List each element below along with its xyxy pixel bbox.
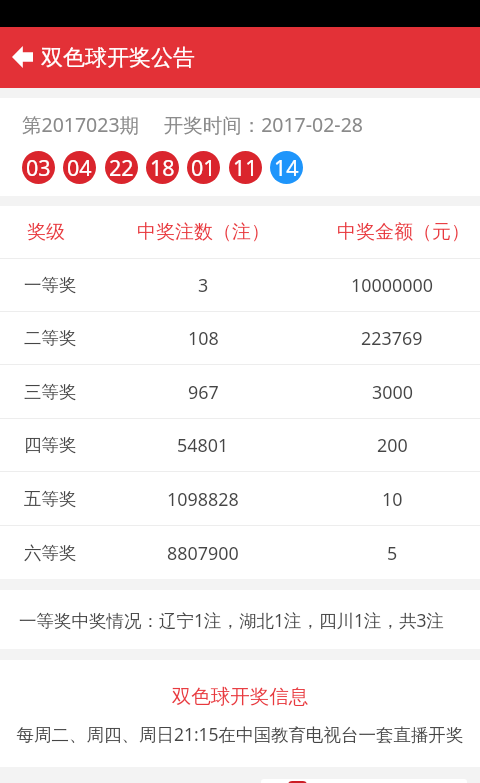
- staticText: 一等奖中奖情况：辽宁1注，湖北1注，四川1注，共3注: [19, 608, 445, 632]
- button[interactable]: Back: [0, 27, 46, 88]
- staticText: 六等奖: [24, 542, 77, 564]
- button[interactable]: 二等奖: [0, 312, 480, 364]
- button[interactable]: 三等奖: [0, 365, 480, 418]
- staticText: 中奖注数（注）: [137, 220, 270, 244]
- button[interactable]: [261, 779, 467, 783]
- staticText: 3: [198, 273, 209, 297]
- button[interactable]: 奖级: [0, 206, 480, 258]
- staticText: 967: [188, 380, 219, 404]
- staticText: 五等奖: [24, 488, 77, 510]
- staticText: 22: [109, 153, 134, 182]
- staticText: 双色球开奖公告: [41, 44, 195, 72]
- staticText: 14: [274, 153, 299, 182]
- staticText: 8807900: [167, 541, 239, 565]
- button[interactable]: 一等奖: [0, 259, 480, 311]
- staticText: 03: [26, 153, 51, 182]
- staticText: 200: [377, 433, 408, 457]
- button[interactable]: 五等奖: [0, 472, 480, 525]
- staticText: 三等奖: [24, 381, 77, 403]
- button[interactable]: 四等奖: [0, 419, 480, 471]
- staticText: 中奖金额（元）: [337, 220, 470, 244]
- button[interactable]: 六等奖: [0, 526, 480, 579]
- staticText: 四等奖: [24, 434, 77, 456]
- staticText: 第2017023期 开奖时间：2017-02-28: [22, 111, 363, 138]
- staticText: 双色球开奖信息: [0, 684, 480, 709]
- staticText: 5: [387, 541, 398, 565]
- staticText: 04: [67, 153, 92, 182]
- staticText: 01: [191, 153, 216, 182]
- staticText: 10: [382, 487, 403, 511]
- staticText: 108: [188, 326, 219, 350]
- staticText: 每周二、周四、周日21:15在中国教育电视台一套直播开奖: [0, 722, 480, 746]
- staticText: 11: [233, 153, 258, 182]
- staticText: 1098828: [167, 487, 239, 511]
- staticText: 3000: [372, 380, 413, 404]
- staticText: 223769: [361, 326, 423, 350]
- staticText: 奖级: [27, 220, 65, 244]
- staticText: 二等奖: [24, 327, 77, 349]
- staticText: 54801: [177, 433, 229, 457]
- staticText: 一等奖: [24, 274, 77, 296]
- staticText: 18: [150, 153, 175, 182]
- staticText: 10000000: [351, 273, 433, 297]
